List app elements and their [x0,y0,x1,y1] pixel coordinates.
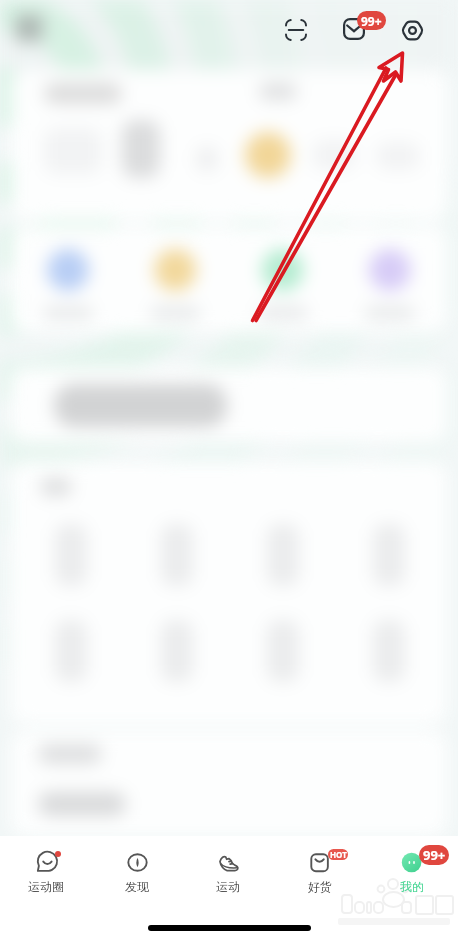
staticText: 99+ [361,13,382,29]
staticText: 99+ [423,846,446,864]
button[interactable]: 99+ [366,846,458,894]
staticText: 发现 [125,879,149,894]
staticText: HOT [330,849,347,860]
button[interactable]: Settings [392,10,432,50]
button[interactable]: 运动圈 [0,846,91,894]
staticText: 运动 [216,879,240,894]
button[interactable]: 发现 [91,846,182,894]
staticText: 好货 [308,879,332,894]
button[interactable]: 运动 [182,846,274,894]
button[interactable]: HOT [274,846,366,894]
staticText: 我的 [400,879,424,894]
button[interactable]: Messages, 99 plus unread [336,6,390,48]
staticText: 运动圈 [28,879,64,894]
button[interactable]: Scan QR code [276,10,316,50]
